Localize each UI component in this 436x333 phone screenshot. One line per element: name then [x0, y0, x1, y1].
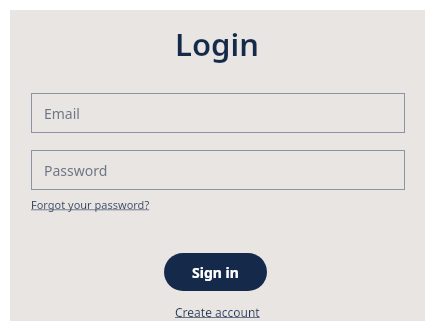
button[interactable]: Sign in [164, 253, 267, 291]
staticText: Email [44, 104, 80, 123]
button[interactable]: Forgot your password? [31, 197, 150, 212]
staticText: Password [44, 161, 108, 180]
button[interactable]: Email [31, 93, 405, 133]
staticText: Sign in [192, 263, 239, 282]
staticText: Forgot your password? [31, 197, 150, 212]
button[interactable]: Password [31, 150, 405, 190]
staticText: Create account [175, 304, 260, 320]
staticText: Login [175, 23, 260, 65]
button[interactable]: Create account [175, 304, 260, 320]
